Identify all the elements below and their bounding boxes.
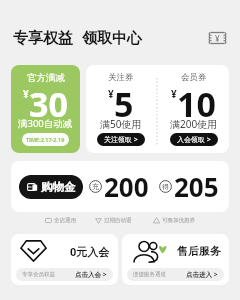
staticText: 5 xyxy=(114,81,134,127)
staticText: 购物金 xyxy=(41,180,76,194)
button[interactable]: 优惠券 xyxy=(208,31,227,45)
button[interactable]: 会员券 xyxy=(158,65,229,153)
staticText: 全店通用 xyxy=(54,217,76,224)
staticText: 满50使用 xyxy=(100,117,142,131)
button[interactable]: 购物金 xyxy=(11,161,229,212)
staticText: 30 xyxy=(29,81,68,127)
staticText: ¥ xyxy=(23,87,29,101)
staticText: 会员券 xyxy=(181,72,207,83)
button[interactable]: 0元入会 xyxy=(11,234,118,285)
staticText: ¥ xyxy=(215,33,220,44)
staticText: 得 xyxy=(162,182,169,191)
staticText: 点击入会 > xyxy=(75,270,107,279)
staticText: 便捷服务通道 xyxy=(133,271,166,278)
staticText: 10 xyxy=(177,81,216,127)
staticText: 200 xyxy=(104,169,149,204)
staticText: 可叠加优惠券 xyxy=(162,217,195,224)
staticText: 关注券 xyxy=(108,72,134,83)
staticText: 205 xyxy=(174,169,219,204)
button[interactable]: 售后服务 xyxy=(122,234,229,285)
staticText: 0元入会 xyxy=(70,244,110,259)
button[interactable]: 关注券 xyxy=(86,65,156,153)
staticText: TIME:2.17-2.19 xyxy=(26,136,65,143)
staticText: ¥ xyxy=(108,87,114,101)
button[interactable]: 官方满减 xyxy=(11,65,80,153)
staticText: 充 xyxy=(92,182,99,191)
staticText: 过期自动退 xyxy=(104,217,132,224)
staticText: 领取中心 xyxy=(82,29,142,48)
staticText: 点击进入 > xyxy=(186,270,218,279)
staticText: 满300自动减 xyxy=(18,117,73,130)
staticText: 入会领取 > xyxy=(177,135,211,145)
staticText: 专享权益 xyxy=(13,29,73,48)
staticText: ¥ xyxy=(171,87,177,101)
staticText: 官方满减 xyxy=(27,72,65,84)
staticText: 满200使用 xyxy=(170,117,218,131)
staticText: 关注领取 > xyxy=(104,135,138,145)
staticText: 售后服务 xyxy=(177,244,221,258)
staticText: 专享会员权益 xyxy=(22,271,55,278)
